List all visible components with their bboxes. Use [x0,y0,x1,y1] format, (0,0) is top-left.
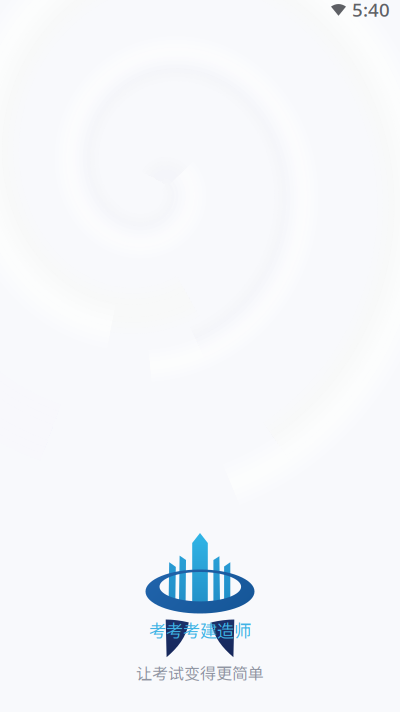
staticText: 5:40 [352,0,390,22]
staticText: 考考考建造师 [149,617,251,643]
staticText: 让考试变得更简单 [136,661,264,684]
